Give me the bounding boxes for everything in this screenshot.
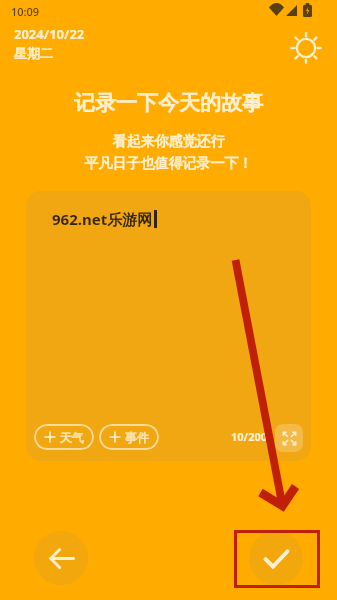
button[interactable]: 962.net乐游网 [26,191,311,461]
staticText: 10:09 [11,4,40,19]
staticText: 962.net乐游网 [52,209,153,229]
staticText: 10/200 [231,429,268,444]
button[interactable]: Confirm [249,531,303,585]
staticText: 事件 [125,430,149,445]
staticText: 星期二 [14,45,53,61]
button[interactable]: 天气 [34,424,94,450]
staticText: 天气 [60,430,84,445]
staticText: 2024/10/22 [14,25,85,43]
staticText: 记录一下今天的故事 [0,90,337,116]
button[interactable]: Back [34,531,88,585]
button[interactable]: 事件 [99,424,159,450]
staticText: 看起来你感觉还行 平凡日子也值得记录一下！ [0,133,337,172]
button[interactable]: Fullscreen [275,424,303,452]
button[interactable]: Theme [288,30,323,65]
